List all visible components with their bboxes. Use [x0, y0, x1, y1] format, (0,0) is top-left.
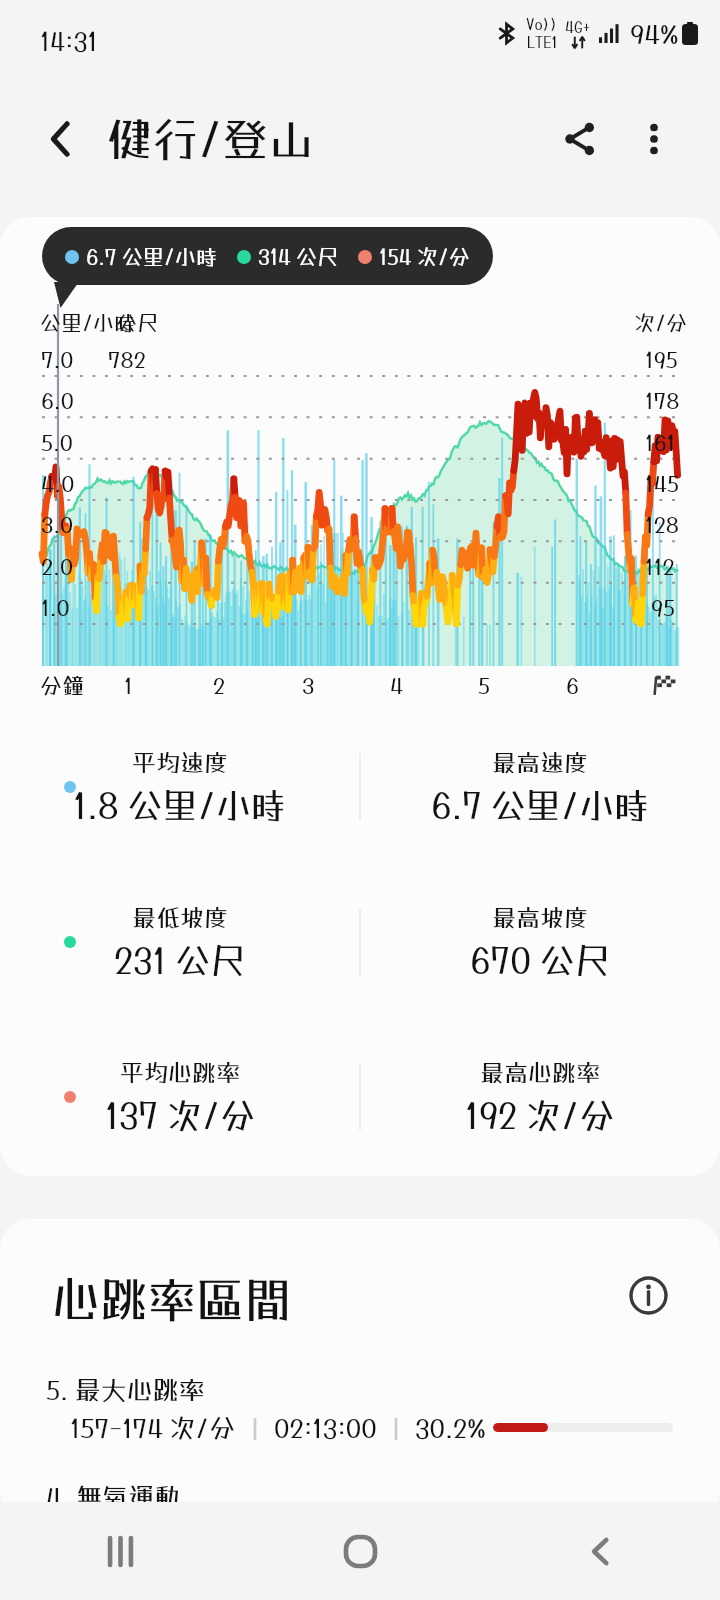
staticText: 314 公尺	[258, 244, 338, 269]
staticText: 次/分	[634, 310, 688, 335]
staticText: |	[249, 1414, 261, 1442]
staticText: 6.0	[41, 387, 74, 413]
staticText: 14:31	[40, 26, 98, 55]
staticText: 3	[302, 672, 315, 698]
staticText: 231 公尺	[114, 940, 246, 981]
staticText: Vo))	[526, 15, 558, 33]
staticText: 平均速度	[132, 748, 228, 776]
staticText: |	[390, 1414, 402, 1442]
staticText: 157-174 次/分	[70, 1412, 236, 1443]
staticText: 128	[645, 511, 679, 537]
button[interactable]: Home	[240, 1502, 480, 1600]
button[interactable]: Back	[480, 1502, 720, 1600]
staticText: 4. 無氧運動	[46, 1481, 181, 1512]
staticText: 6	[566, 672, 579, 698]
staticText: 4G+	[565, 18, 591, 36]
staticText: 公尺	[116, 310, 158, 335]
button[interactable]: Recents	[0, 1502, 240, 1600]
staticText: 平均心跳率	[120, 1058, 240, 1086]
staticText: 6.7 公里/小時	[86, 244, 217, 269]
button[interactable]: 心跳率區間	[52, 1271, 293, 1328]
button[interactable]: More options	[626, 111, 682, 167]
staticText: 最低坡度	[132, 903, 228, 931]
staticText: 782	[108, 346, 146, 372]
staticText: 最高速度	[492, 748, 588, 776]
staticText: 137 次/分	[105, 1095, 256, 1136]
button[interactable]: Info	[620, 1267, 676, 1323]
staticText: 2	[213, 672, 226, 698]
staticText: 670 公尺	[470, 940, 610, 981]
staticText: 5	[478, 672, 490, 698]
staticText: 30.2%	[415, 1412, 486, 1443]
staticText: 145	[645, 470, 680, 496]
staticText: 7.0	[41, 346, 74, 372]
staticText: 分鐘	[40, 672, 85, 698]
staticText: 5. 最大心跳率	[46, 1374, 205, 1405]
staticText: 最高心跳率	[480, 1058, 600, 1086]
staticText: 02:13:00	[274, 1412, 377, 1443]
staticText: 1.8 公里/小時	[73, 785, 287, 826]
staticText: 最高坡度	[492, 903, 588, 931]
button[interactable]: Share	[552, 111, 608, 167]
staticText: 195	[645, 346, 678, 372]
staticText: 1.0	[41, 594, 70, 620]
staticText: 178	[645, 387, 680, 413]
staticText: 4.0	[41, 470, 75, 496]
staticText: 154 次/分	[379, 244, 470, 269]
staticText: 4	[390, 672, 404, 698]
staticText: 95	[651, 594, 676, 620]
staticText: 公里/小時	[40, 310, 136, 335]
staticText: 健行/登山	[106, 112, 315, 166]
staticText: 192 次/分	[465, 1095, 615, 1136]
staticText: 161	[645, 429, 676, 455]
staticText: LTE1	[527, 33, 558, 51]
staticText: 3.0	[41, 511, 74, 537]
button[interactable]: Back	[34, 111, 90, 167]
staticText: 112	[645, 553, 675, 579]
staticText: 94%	[630, 18, 679, 49]
staticText: 1	[124, 672, 133, 698]
staticText: 心跳率區間	[52, 1271, 293, 1328]
staticText: 5.0	[41, 429, 73, 455]
staticText: 2.0	[41, 553, 73, 579]
staticText: 6.7 公里/小時	[431, 785, 650, 826]
